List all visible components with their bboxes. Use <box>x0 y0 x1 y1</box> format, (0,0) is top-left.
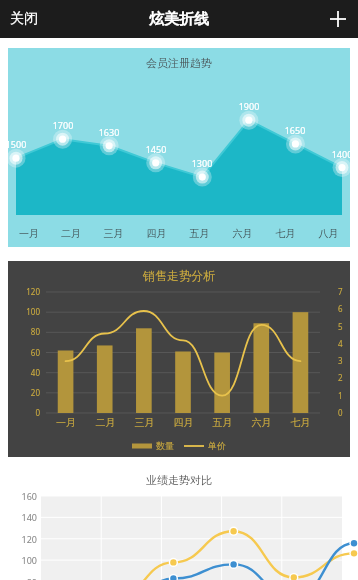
staticText: 0 <box>12 407 40 418</box>
staticText: 160 <box>8 490 37 502</box>
staticText: 1450 <box>142 143 170 155</box>
staticText: 60 <box>12 347 40 358</box>
staticText: 1700 <box>49 119 77 131</box>
staticText: 6 <box>338 303 343 314</box>
staticText: 1400 <box>328 148 356 160</box>
staticText: 1 <box>338 390 343 401</box>
staticText: 销售走势分析 <box>143 268 215 283</box>
button[interactable]: 业绩走势对比 <box>8 467 350 580</box>
staticText: 80 <box>12 326 40 337</box>
staticText: 一月 <box>8 227 50 240</box>
staticText: 数量 <box>156 440 174 451</box>
staticText: 三月 <box>125 416 164 429</box>
staticText: 业绩走势对比 <box>146 473 212 487</box>
staticText: 1500 <box>2 138 30 150</box>
staticText: 关闭 <box>10 10 38 28</box>
staticText: 140 <box>8 511 37 523</box>
staticText: 4 <box>338 338 343 349</box>
staticText: 五月 <box>178 227 221 240</box>
staticText: 100 <box>8 554 37 566</box>
staticText: 单价 <box>208 440 226 451</box>
staticText: 八月 <box>307 227 350 240</box>
staticText: 120 <box>8 533 37 545</box>
staticText: 七月 <box>264 227 307 240</box>
staticText: 120 <box>12 286 40 297</box>
staticText: 1630 <box>95 126 123 138</box>
staticText: 二月 <box>86 416 125 429</box>
staticText: 1650 <box>281 124 309 136</box>
staticText: 四月 <box>164 416 203 429</box>
button[interactable]: Add <box>318 0 358 38</box>
staticText: 六月 <box>221 227 264 240</box>
staticText: 5 <box>338 321 343 332</box>
staticText: 2 <box>338 372 343 383</box>
staticText: 1300 <box>188 157 216 169</box>
staticText: 六月 <box>242 416 281 429</box>
staticText: 40 <box>12 367 40 378</box>
staticText: 炫美折线 <box>149 10 209 29</box>
button[interactable]: 销售走势分析 <box>8 261 350 457</box>
button[interactable]: 会员注册趋势 <box>8 48 350 247</box>
staticText: 一月 <box>46 416 86 429</box>
staticText: 7 <box>338 286 343 297</box>
staticText: 80 <box>8 576 37 580</box>
staticText: 0 <box>338 407 343 418</box>
staticText: 五月 <box>203 416 242 429</box>
staticText: 3 <box>338 355 343 366</box>
staticText: 三月 <box>92 227 135 240</box>
button[interactable]: 关闭 <box>0 0 48 38</box>
staticText: 100 <box>12 306 40 317</box>
staticText: 20 <box>12 387 40 398</box>
staticText: 会员注册趋势 <box>146 56 212 70</box>
staticText: 四月 <box>135 227 178 240</box>
staticText: 七月 <box>281 416 320 429</box>
staticText: 1900 <box>235 100 263 112</box>
staticText: 二月 <box>50 227 92 240</box>
